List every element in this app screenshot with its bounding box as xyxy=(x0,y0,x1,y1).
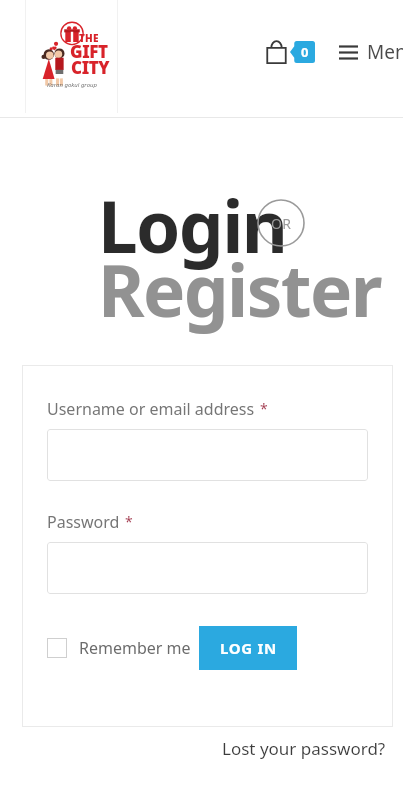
staticText: Remember me xyxy=(79,637,191,659)
button[interactable]: The Gift City home xyxy=(25,0,118,113)
staticText: OR xyxy=(271,214,292,233)
staticText: 0 xyxy=(301,43,309,61)
staticText: Lost your password? xyxy=(222,737,386,760)
button[interactable]: Text input field xyxy=(47,429,368,481)
staticText: Karan gokul group xyxy=(47,81,97,89)
button[interactable]: LOG IN xyxy=(199,626,297,670)
staticText: * xyxy=(125,512,133,531)
staticText: Login xyxy=(98,177,287,274)
staticText: THE xyxy=(79,31,99,45)
staticText: Menu xyxy=(367,39,403,65)
staticText: Username or email address xyxy=(47,398,255,420)
staticText: CITY xyxy=(71,56,110,79)
button[interactable]: Remember me xyxy=(45,631,193,665)
button[interactable]: Text input field xyxy=(47,542,368,594)
button[interactable]: Lost your password? xyxy=(217,733,391,764)
staticText: * xyxy=(260,399,268,418)
staticText: Password xyxy=(47,511,120,533)
button[interactable]: Menu xyxy=(337,34,403,70)
staticText: Register xyxy=(98,241,381,338)
staticText: GIFT xyxy=(70,40,108,63)
button[interactable]: Cart, 0 items xyxy=(264,37,317,67)
staticText: LOG IN xyxy=(220,638,277,658)
